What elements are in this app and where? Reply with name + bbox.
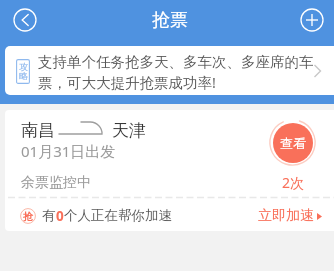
button[interactable]: 查看 bbox=[273, 123, 313, 163]
staticText: 有 bbox=[42, 207, 56, 224]
staticText: 天津 bbox=[112, 120, 146, 141]
staticText: 个人正在帮你加速 bbox=[64, 207, 172, 224]
staticText: 01月31日出发 bbox=[21, 141, 116, 161]
button[interactable]: Add bbox=[300, 8, 324, 32]
staticText: 查看 bbox=[280, 135, 306, 151]
staticText: 0 bbox=[56, 207, 64, 225]
button[interactable]: 立即加速 bbox=[258, 207, 322, 225]
button[interactable]: 攻 略 bbox=[5, 46, 334, 95]
staticText: 攻 略 bbox=[19, 61, 28, 82]
button[interactable]: Back bbox=[13, 8, 37, 32]
staticText: 余票监控中 bbox=[21, 174, 91, 192]
staticText: 南昌 bbox=[21, 120, 55, 141]
staticText: 抢票 bbox=[152, 9, 188, 32]
staticText: 2次 bbox=[282, 173, 305, 192]
button[interactable]: 南昌 bbox=[5, 110, 334, 231]
staticText: 支持单个任务抢多天、多车次、多座席的车票，可大大提升抢票成功率! bbox=[38, 53, 316, 93]
staticText: 立即加速 bbox=[258, 207, 314, 225]
staticText: 抢 bbox=[23, 210, 33, 223]
